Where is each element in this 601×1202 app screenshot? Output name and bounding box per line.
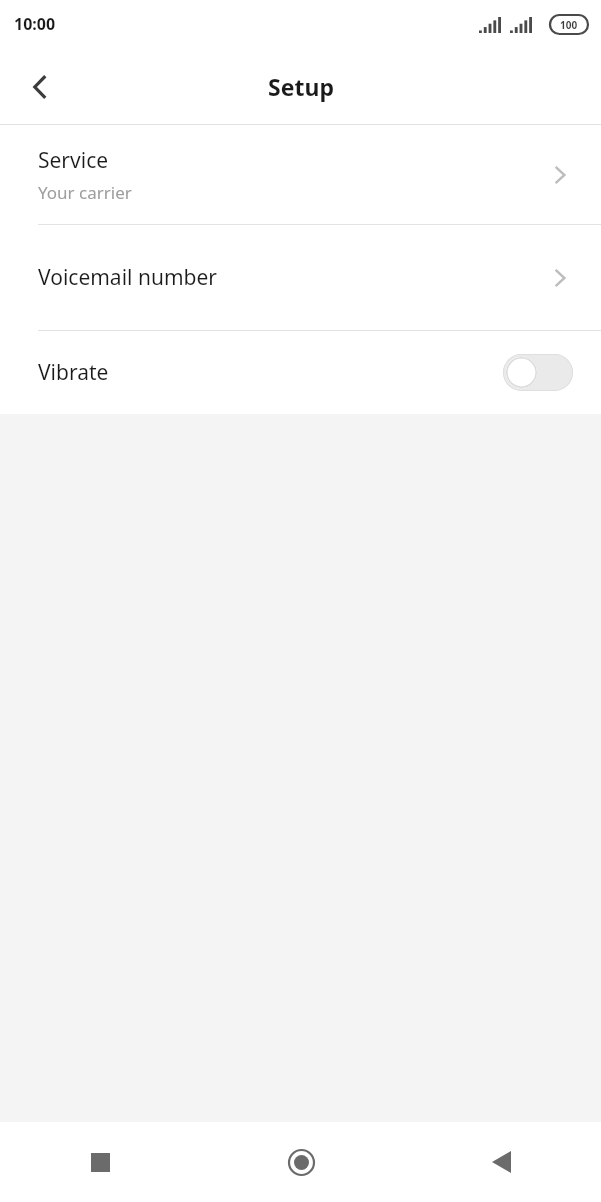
staticText: 10:00 — [14, 13, 56, 35]
staticText: Vibrate — [38, 358, 503, 387]
button[interactable]: Home — [201, 1122, 401, 1202]
button[interactable]: Recent apps — [0, 1122, 201, 1202]
staticText: Service — [38, 146, 109, 175]
button[interactable]: Back — [401, 1122, 601, 1202]
staticText: Voicemail number — [38, 263, 217, 292]
staticText: Your carrier — [38, 181, 132, 204]
staticText: 100 — [560, 18, 578, 32]
button[interactable]: Service — [0, 125, 601, 224]
button[interactable]: Back — [8, 55, 72, 119]
staticText: Setup — [268, 71, 334, 102]
button[interactable]: Voicemail number — [0, 225, 601, 330]
button[interactable]: Vibrate — [0, 331, 601, 414]
